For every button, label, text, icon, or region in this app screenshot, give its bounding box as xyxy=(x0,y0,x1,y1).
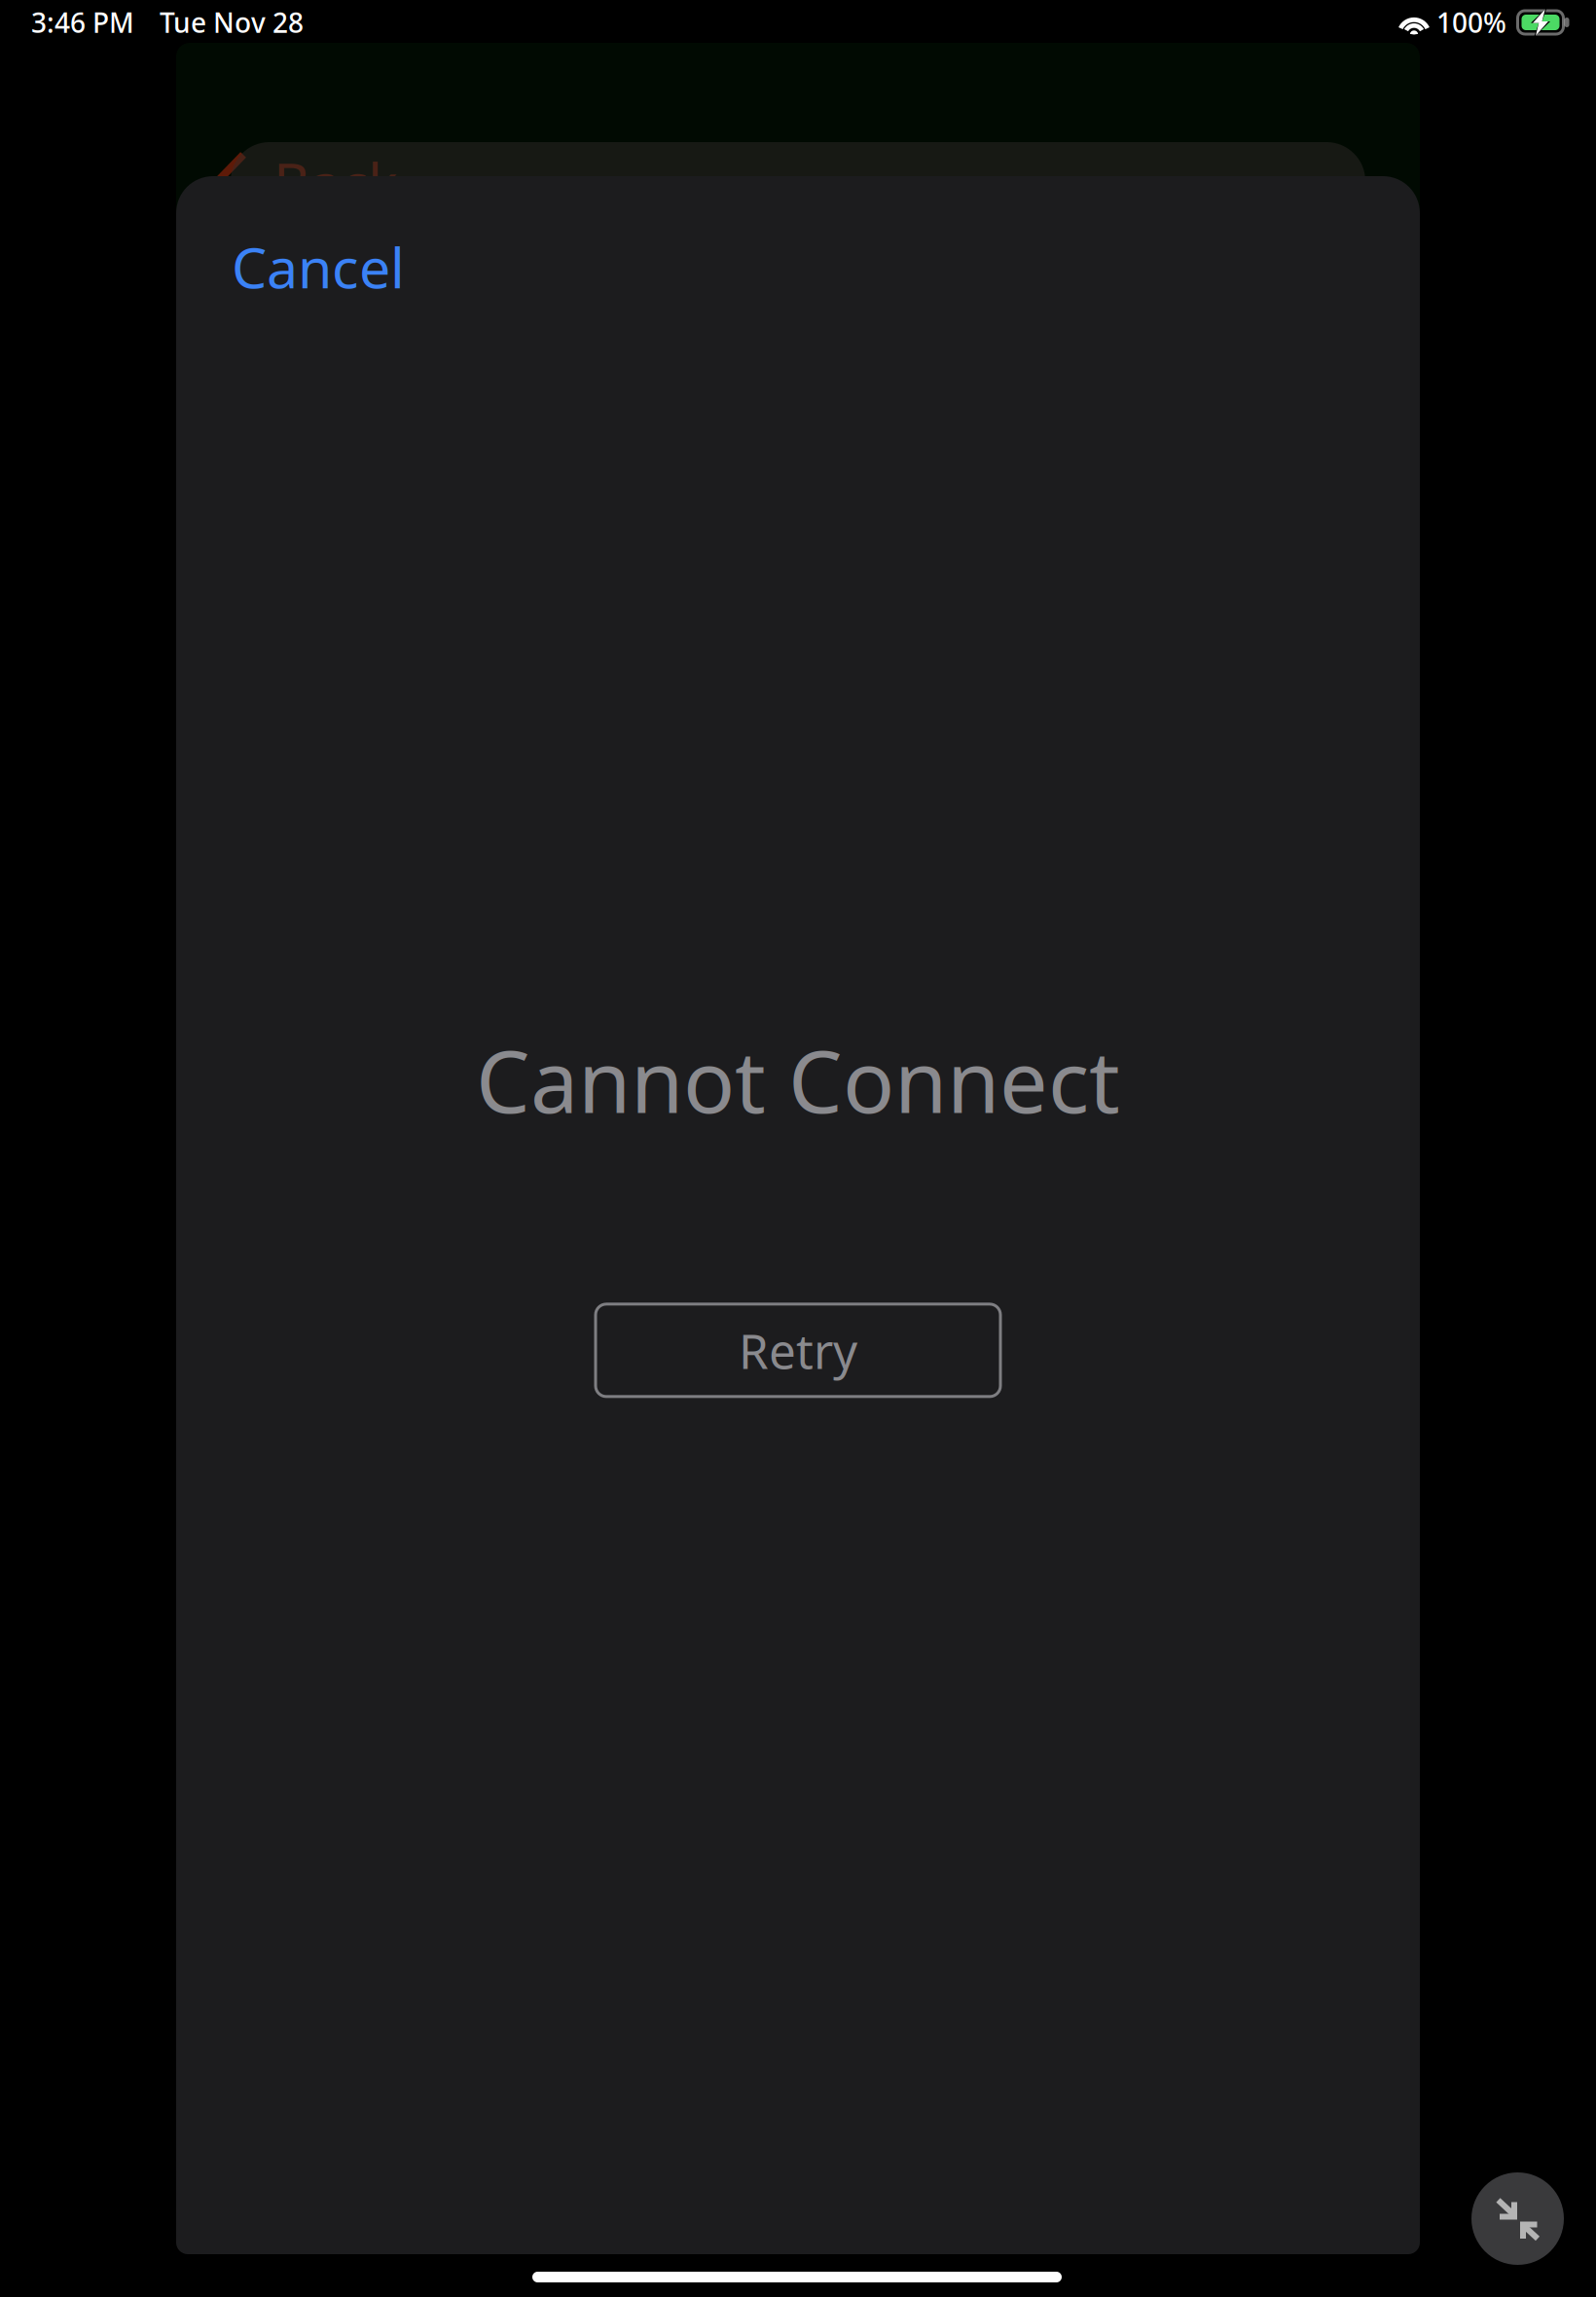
staticText: 100% xyxy=(1436,4,1506,40)
staticText: Cannot Connect xyxy=(476,1023,1120,1137)
button[interactable]: Cancel xyxy=(176,176,455,320)
staticText: Cancel xyxy=(232,230,405,304)
button[interactable]: Retry xyxy=(596,1304,1000,1397)
button[interactable]: Exit full screen xyxy=(1471,2172,1564,2265)
staticText: 3:46 PM xyxy=(31,4,134,40)
staticText: Tue Nov 28 xyxy=(160,4,304,40)
staticText: Back xyxy=(273,145,398,219)
staticText: Retry xyxy=(739,1318,857,1382)
